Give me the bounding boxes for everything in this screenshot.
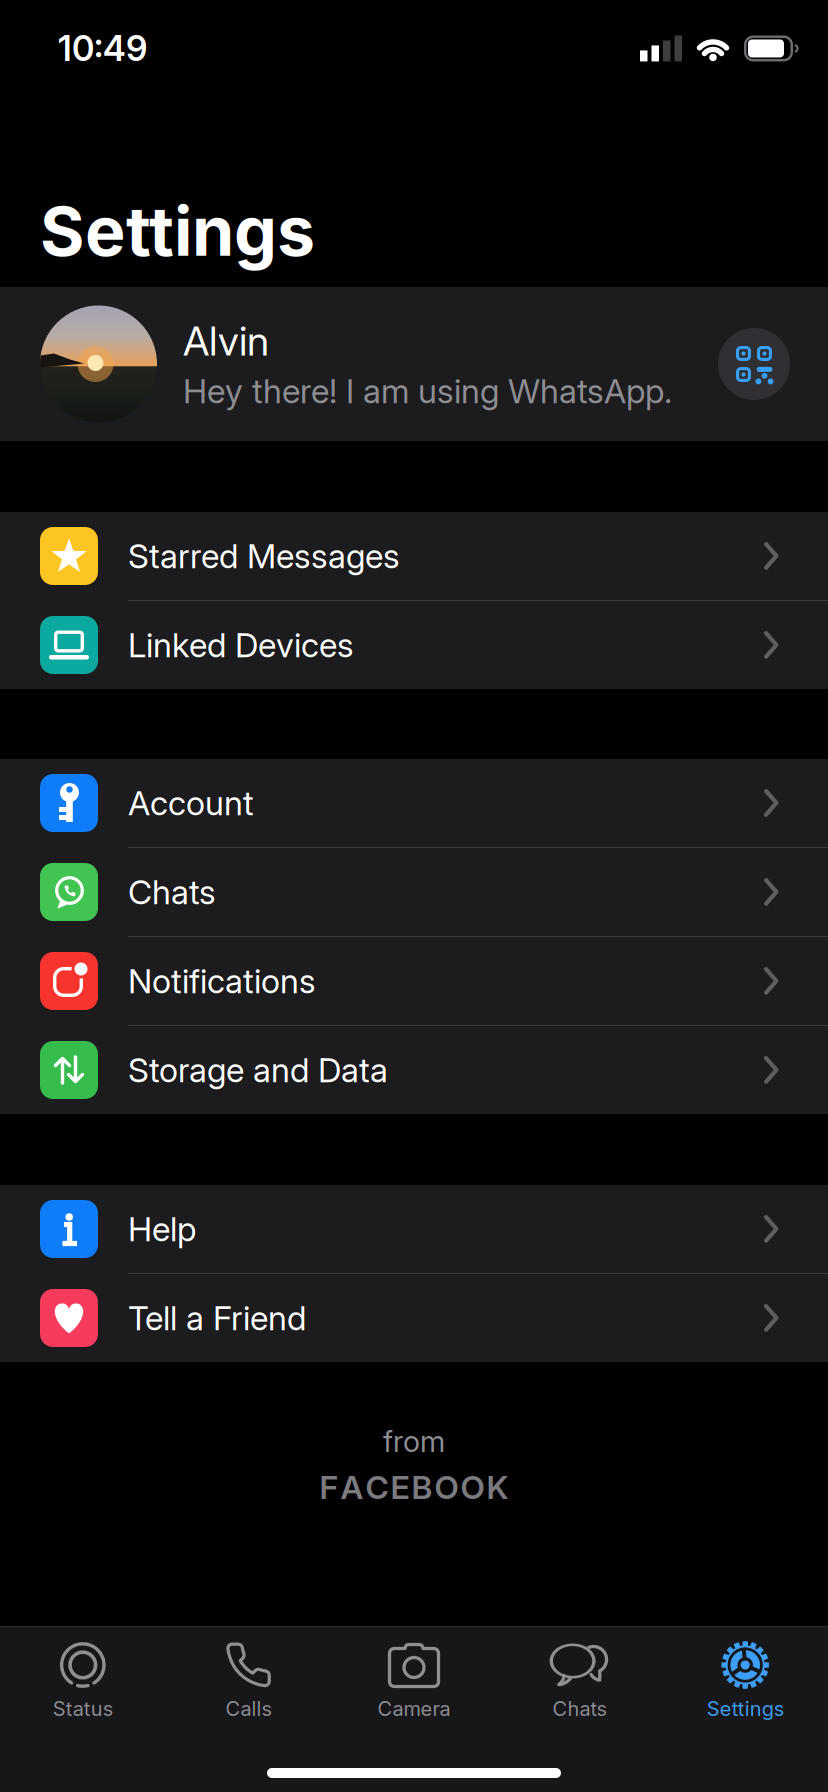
button[interactable]: Starred Messages — [0, 512, 828, 600]
staticText: Alvin — [183, 317, 269, 364]
staticText: Account — [128, 783, 254, 823]
staticText: 10:49 — [58, 28, 147, 69]
button[interactable]: Tell a Friend — [0, 1274, 828, 1362]
staticText: Chats — [128, 872, 216, 912]
staticText: Starred Messages — [128, 536, 400, 576]
staticText: Calls — [225, 1697, 271, 1721]
staticText: Notifications — [128, 961, 316, 1001]
staticText: Tell a Friend — [128, 1298, 306, 1338]
button[interactable]: Storage and Data — [0, 1026, 828, 1114]
button[interactable]: Account — [0, 759, 828, 847]
staticText: Hey there! I am using WhatsApp. — [183, 371, 672, 411]
button[interactable]: Settings — [662, 1639, 828, 1721]
staticText: Settings — [40, 191, 315, 271]
button[interactable]: Chats — [497, 1639, 662, 1721]
staticText: Settings — [707, 1697, 784, 1721]
button[interactable]: Linked Devices — [0, 601, 828, 689]
staticText: F A C E B O O K — [319, 1469, 508, 1506]
staticText: Linked Devices — [128, 625, 354, 665]
staticText: Chats — [553, 1697, 607, 1721]
button[interactable]: Alvin — [0, 287, 828, 441]
button[interactable]: Chats — [0, 848, 828, 936]
staticText: Storage and Data — [128, 1050, 388, 1090]
button[interactable]: Camera — [331, 1639, 497, 1721]
button[interactable]: Help — [0, 1185, 828, 1273]
button[interactable]: Status — [0, 1639, 166, 1721]
staticText: Status — [53, 1697, 113, 1721]
staticText: Camera — [377, 1697, 450, 1721]
button[interactable]: Calls — [166, 1639, 331, 1721]
staticText: Help — [128, 1209, 196, 1249]
button[interactable]: Notifications — [0, 937, 828, 1025]
button[interactable]: QR code — [718, 328, 790, 400]
staticText: from — [383, 1424, 445, 1459]
